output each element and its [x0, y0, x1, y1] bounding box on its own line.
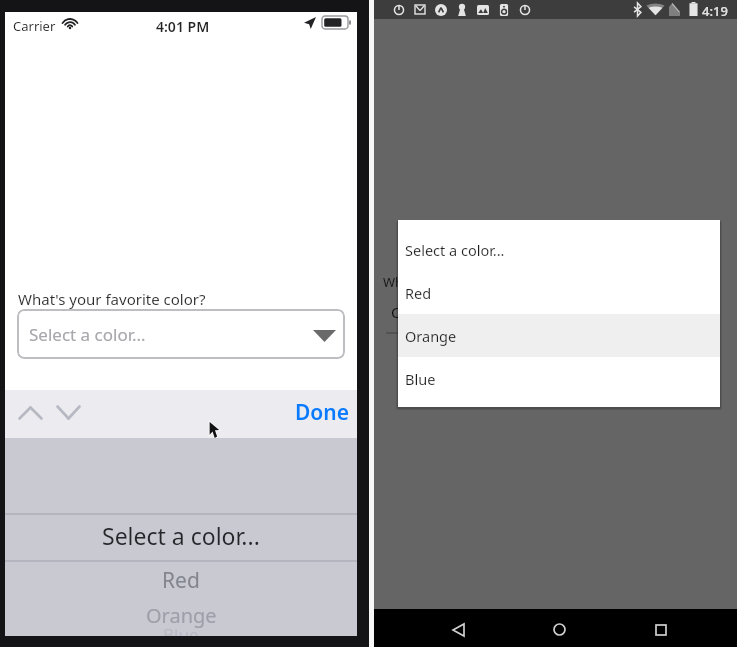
- button[interactable]: Back: [432, 609, 484, 647]
- staticText: Select a color...: [102, 520, 260, 551]
- staticText: Orange: [146, 602, 217, 629]
- button[interactable]: Orange: [398, 314, 720, 357]
- button[interactable]: Done: [291, 390, 353, 438]
- staticText: What's your favorite color?: [383, 273, 546, 291]
- staticText: What's your favorite color?: [18, 289, 206, 309]
- staticText: 4:19: [702, 2, 728, 20]
- staticText: Red: [162, 566, 200, 595]
- staticText: Blue: [405, 369, 436, 389]
- staticText: Choose a colour: [391, 302, 505, 322]
- staticText: Orange: [405, 326, 457, 346]
- staticText: Blue: [163, 623, 199, 636]
- staticText: Select a color...: [405, 240, 505, 260]
- button[interactable]: Home: [537, 609, 589, 647]
- button[interactable]: Recents: [635, 609, 687, 647]
- button[interactable]: Red: [398, 271, 720, 314]
- button[interactable]: Previous field: [11, 390, 49, 438]
- button[interactable]: Blue: [398, 357, 720, 400]
- staticText: 4:01 PM: [156, 17, 210, 36]
- button[interactable]: Select a color...: [17, 309, 345, 359]
- button[interactable]: Next field: [50, 390, 88, 438]
- staticText: Done: [295, 398, 350, 427]
- staticText: Select a color...: [29, 323, 146, 346]
- button[interactable]: Select a color...: [398, 228, 720, 271]
- staticText: Red: [405, 283, 432, 303]
- staticText: Carrier: [13, 17, 56, 35]
